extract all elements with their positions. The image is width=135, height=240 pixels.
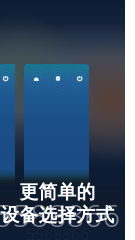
staticText: 更简单的 xyxy=(19,180,95,203)
staticText: 5588866 xyxy=(26,223,89,240)
staticText: 5588866 xyxy=(0,195,120,235)
staticText: 设备选择方式 xyxy=(0,203,114,226)
